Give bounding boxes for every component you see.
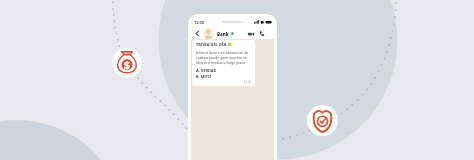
staticText: 12:00 [244,80,252,84]
staticText: TRIVIA DEL DÍA [196,42,227,47]
button[interactable]: Call [258,30,266,38]
other: Ahorro [112,48,142,78]
staticText: Bank [217,31,229,37]
button[interactable]: Back [193,29,202,38]
staticText: $ [124,58,130,72]
button[interactable]: Video call [247,30,255,38]
staticText: 12:00 [194,20,204,25]
button[interactable]: A. VERDAD [196,68,217,73]
other: Seguridad [307,105,338,136]
staticText: Invertir dinero en almacenes de cadena p… [196,50,252,65]
button[interactable]: B. MITO [196,74,212,79]
